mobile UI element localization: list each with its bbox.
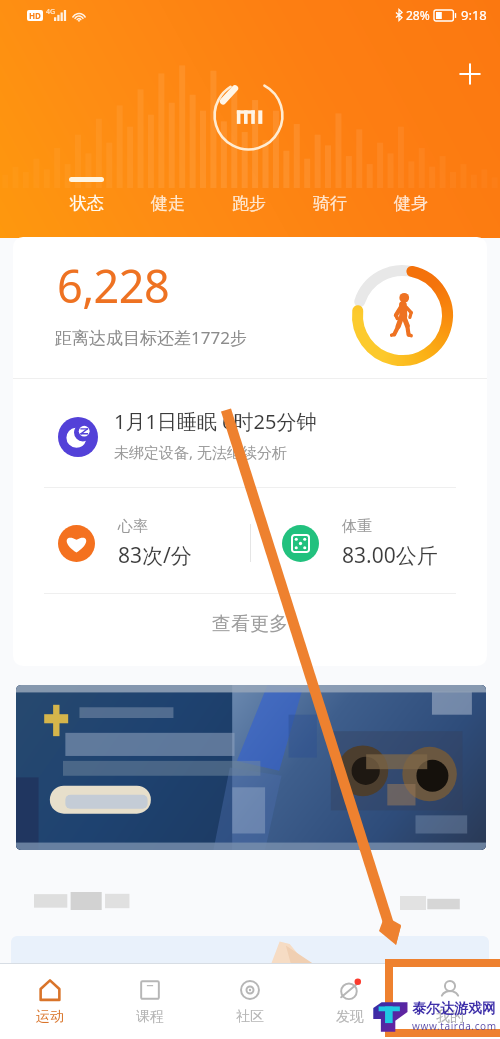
button[interactable]: 课程	[100, 964, 200, 1039]
button[interactable]: 健走	[127, 177, 208, 214]
button[interactable]: 心率	[13, 488, 250, 593]
staticText: 9:18	[461, 6, 487, 24]
button[interactable]: 跑步	[208, 177, 289, 214]
button[interactable]: Promotion banner	[16, 685, 486, 850]
staticText: 健身	[394, 193, 428, 214]
staticText: 运动	[36, 1008, 64, 1026]
button[interactable]: 社区	[200, 964, 300, 1039]
staticText: 我的	[436, 1008, 464, 1026]
staticText: 未绑定设备, 无法继续分析	[114, 442, 287, 462]
staticText: 泰尔达游戏网	[412, 1000, 496, 1018]
staticText: 1月1日睡眠 6时25分钟	[114, 408, 317, 435]
button[interactable]: 骑行	[289, 177, 370, 214]
button[interactable]: 发现	[300, 964, 400, 1039]
staticText: 体重	[342, 517, 372, 536]
staticText: 距离达成目标还差1772步	[55, 326, 247, 349]
button[interactable]: 运动	[0, 964, 100, 1039]
button[interactable]: Card	[11, 936, 489, 963]
staticText: 心率	[118, 517, 148, 536]
button[interactable]: 体重	[250, 488, 487, 593]
staticText: 83.00公斤	[342, 541, 438, 570]
staticText: 4G	[46, 7, 56, 17]
staticText: 跑步	[232, 193, 266, 214]
staticText: 课程	[136, 1008, 164, 1026]
button[interactable]: 1月1日睡眠 6时25分钟	[13, 379, 487, 487]
staticText: 发现	[336, 1008, 364, 1026]
staticText: 健走	[151, 193, 185, 214]
button[interactable]: 状态	[46, 177, 127, 214]
button[interactable]: 健身	[370, 177, 451, 214]
staticText: 查看更多	[212, 612, 288, 636]
staticText: HD	[29, 10, 41, 21]
staticText: www.tairda.com	[412, 1019, 497, 1033]
staticText: 83次/分	[118, 541, 192, 570]
staticText: 6,228	[57, 255, 170, 316]
staticText: 状态	[70, 193, 104, 214]
staticText: 社区	[236, 1008, 264, 1026]
staticText: 28%	[406, 7, 430, 23]
button[interactable]: 我的	[400, 964, 500, 1039]
button[interactable]: Add	[450, 54, 490, 94]
staticText: 骑行	[313, 193, 347, 214]
button[interactable]: 查看更多	[13, 594, 487, 666]
button[interactable]: 6,228	[13, 237, 487, 378]
